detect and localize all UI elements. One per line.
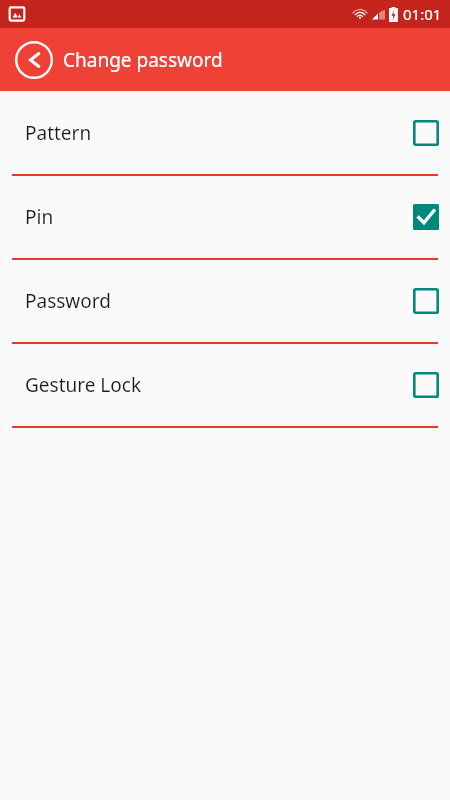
staticText: Pattern bbox=[25, 120, 413, 146]
button[interactable]: Pin bbox=[0, 176, 450, 258]
staticText: Gesture Lock bbox=[25, 372, 413, 398]
staticText: Change password bbox=[63, 47, 223, 73]
staticText: Password bbox=[25, 288, 413, 314]
button[interactable]: Back bbox=[10, 36, 58, 84]
button[interactable]: Gesture Lock bbox=[0, 344, 450, 426]
staticText: Pin bbox=[25, 204, 413, 230]
staticText: 01:01 bbox=[403, 4, 442, 24]
button[interactable]: Password bbox=[0, 260, 450, 342]
button[interactable]: Pattern bbox=[0, 92, 450, 174]
